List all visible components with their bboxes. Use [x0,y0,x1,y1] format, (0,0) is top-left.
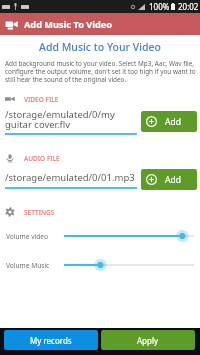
staticText: /storage/emulated/0/my guitar cover.flv [5,108,138,130]
staticText: Apply [137,335,159,346]
staticText: Add Music to Your Video [0,40,200,54]
button[interactable]: Add [141,111,197,132]
staticText: SETTINGS [24,208,55,217]
staticText: Volume Music [6,261,50,270]
staticText: /storage/emulated/0/01.mp3 [5,171,135,184]
staticText: 100% [149,1,170,12]
button[interactable]: My records [4,330,98,350]
button[interactable]: Add [141,169,197,190]
staticText: My records [30,335,72,346]
button[interactable] [64,230,195,242]
staticText: AUDIO FILE [24,154,60,163]
staticText: Add [165,116,181,128]
staticText: Volume video [6,232,49,241]
button[interactable]: Apply [101,330,195,350]
staticText: Add background music to your video. Sele… [5,59,196,84]
staticText: Add [165,174,181,186]
staticText: Add Music To Video [24,18,113,31]
staticText: VIDEO FILE [24,95,59,104]
button[interactable] [64,259,195,271]
staticText: 20:02 [178,1,199,12]
